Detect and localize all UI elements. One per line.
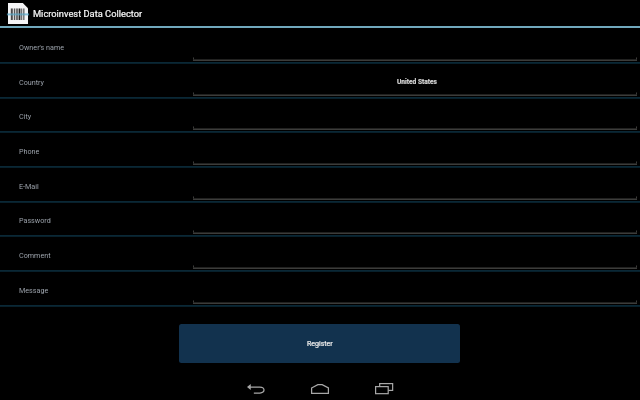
staticText: Owner's name	[19, 43, 65, 51]
staticText: Message	[19, 286, 49, 294]
button[interactable]: Owner's name	[0, 29, 640, 64]
button[interactable]: Back	[243, 377, 269, 400]
button[interactable]: Home	[307, 377, 333, 400]
staticText: Microinvest Data Collector	[33, 8, 143, 19]
button[interactable]: Message	[0, 272, 640, 307]
button[interactable]: Country	[0, 64, 640, 99]
button[interactable]: Register	[179, 324, 460, 363]
button[interactable]: Microinvest Data Collector	[0, 0, 640, 28]
staticText: E-Mail	[19, 182, 39, 190]
button[interactable]: Password	[0, 202, 640, 237]
staticText: United States	[397, 78, 437, 86]
staticText: City	[19, 112, 32, 120]
staticText: Phone	[19, 147, 40, 155]
staticText: Country	[19, 78, 44, 86]
button[interactable]: Recent apps	[371, 377, 397, 400]
button[interactable]: Comment	[0, 237, 640, 272]
button[interactable]: E-Mail	[0, 168, 640, 203]
staticText: Comment	[19, 251, 51, 259]
button[interactable]: Phone	[0, 133, 640, 168]
staticText: Password	[19, 216, 51, 224]
staticText: Register	[307, 340, 333, 348]
button[interactable]: City	[0, 98, 640, 133]
